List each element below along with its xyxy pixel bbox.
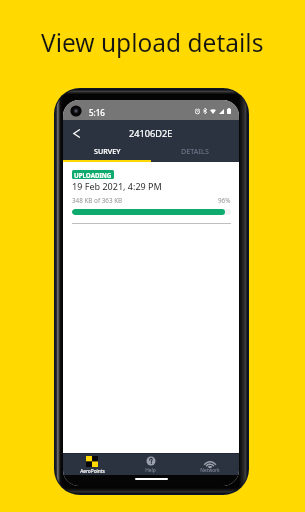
staticText: 24106D2E — [129, 127, 173, 140]
button[interactable]: Network — [180, 453, 239, 475]
staticText: DETAILS — [181, 146, 209, 156]
button[interactable]: SURVEY — [63, 143, 151, 159]
staticText: SURVEY — [94, 146, 121, 156]
staticText: Help — [145, 467, 156, 474]
staticText: UPLOADING — [74, 171, 112, 179]
staticText: 348 KB of 363 KB — [72, 196, 123, 205]
button[interactable]: Back — [66, 121, 86, 145]
staticText: Network — [200, 467, 220, 474]
button[interactable]: DETAILS — [151, 143, 239, 159]
staticText: AeroPoints — [80, 468, 105, 475]
staticText: 5:16 — [89, 107, 105, 118]
staticText: View upload details — [41, 26, 264, 59]
staticText: 19 Feb 2021, 4:29 PM — [72, 180, 162, 192]
button[interactable]: AeroPoints — [63, 453, 121, 475]
staticText: 96% — [218, 196, 231, 205]
button[interactable]: Help — [121, 453, 180, 475]
